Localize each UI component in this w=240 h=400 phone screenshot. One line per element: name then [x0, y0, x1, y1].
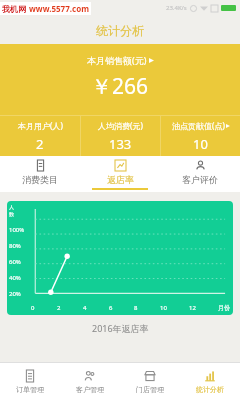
staticText: 月份: [218, 304, 230, 312]
staticText: 本月用户(人): [18, 120, 63, 131]
staticText: 客户评价: [182, 174, 218, 185]
staticText: 2016年返店率: [92, 322, 149, 334]
staticText: 人 数: [9, 204, 14, 218]
button[interactable]: 客户评价: [160, 156, 240, 192]
staticText: 门店管理: [136, 385, 164, 394]
staticText: 23.4K/s: [166, 4, 187, 12]
staticText: 油点贡献值(点): [172, 120, 225, 131]
button[interactable]: 门店管理: [120, 363, 180, 400]
button[interactable]: 订单管理: [0, 363, 60, 400]
staticText: 20%: [9, 290, 21, 298]
staticText: 0: [31, 304, 35, 312]
staticText: 2: [57, 304, 61, 312]
staticText: www.5577.com: [29, 3, 89, 14]
staticText: 12: [189, 304, 196, 312]
staticText: 本月销售额(元): [87, 54, 147, 66]
button[interactable]: 本月用户(人): [0, 116, 80, 156]
staticText: 消费类目: [22, 174, 58, 185]
staticText: 4: [83, 304, 87, 312]
button[interactable]: 统计分析: [180, 363, 240, 400]
staticText: 10: [160, 304, 167, 312]
button[interactable]: 消费类目: [0, 156, 80, 192]
staticText: 100%: [9, 226, 25, 234]
staticText: 统计分析: [96, 23, 144, 38]
staticText: 40%: [9, 274, 21, 282]
button[interactable]: 客户管理: [60, 363, 120, 400]
staticText: 80%: [9, 242, 21, 250]
staticText: 人均消费(元): [98, 120, 143, 131]
staticText: 6: [109, 304, 113, 312]
button[interactable]: 油点贡献值(点): [161, 116, 240, 156]
staticText: 统计分析: [196, 385, 224, 394]
button[interactable]: 返店率: [80, 156, 160, 192]
staticText: 60%: [9, 258, 21, 266]
staticText: 订单管理: [16, 385, 44, 394]
staticText: 客户管理: [76, 385, 104, 394]
button[interactable]: 人均消费(元): [81, 116, 160, 156]
staticText: ￥266: [91, 72, 149, 101]
staticText: 2: [36, 135, 44, 153]
staticText: 10: [193, 135, 208, 153]
staticText: 我机网: [2, 4, 26, 14]
staticText: 返店率: [107, 174, 134, 185]
staticText: 8: [134, 304, 138, 312]
staticText: 133: [109, 135, 132, 153]
button[interactable]: 本月销售额(元): [0, 44, 240, 66]
